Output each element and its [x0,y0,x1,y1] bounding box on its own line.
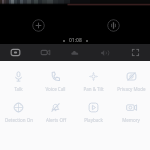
staticText: Playback [84,117,103,123]
staticText: Voice Call [45,86,66,92]
button[interactable]: Pan & Tilt [74,61,112,92]
button[interactable]: Full screen [120,44,150,61]
button[interactable]: Memory [112,92,150,123]
button[interactable]: Cloud [60,44,90,61]
button[interactable]: Playback [74,92,112,123]
staticText: Talk [14,86,23,92]
staticText: Detection On [5,117,33,123]
button[interactable]: Talk [0,61,37,92]
button[interactable]: Privacy Mode [112,61,150,92]
staticText: 01:08 [69,37,82,44]
staticText: Privacy Mode [117,86,146,92]
button[interactable]: Microphone [107,19,120,32]
button[interactable]: Alerts Off [37,92,74,123]
button[interactable]: Snapshot [0,44,30,61]
staticText: Memory [122,117,140,123]
button[interactable]: Volume [90,44,120,61]
button[interactable]: Zoom in [32,19,45,32]
button[interactable]: Detection On [0,92,37,123]
button[interactable]: Record video [30,44,60,61]
button[interactable]: Voice Call [37,61,74,92]
staticText: Alerts Off [46,117,66,123]
staticText: Pan & Tilt [83,86,104,92]
